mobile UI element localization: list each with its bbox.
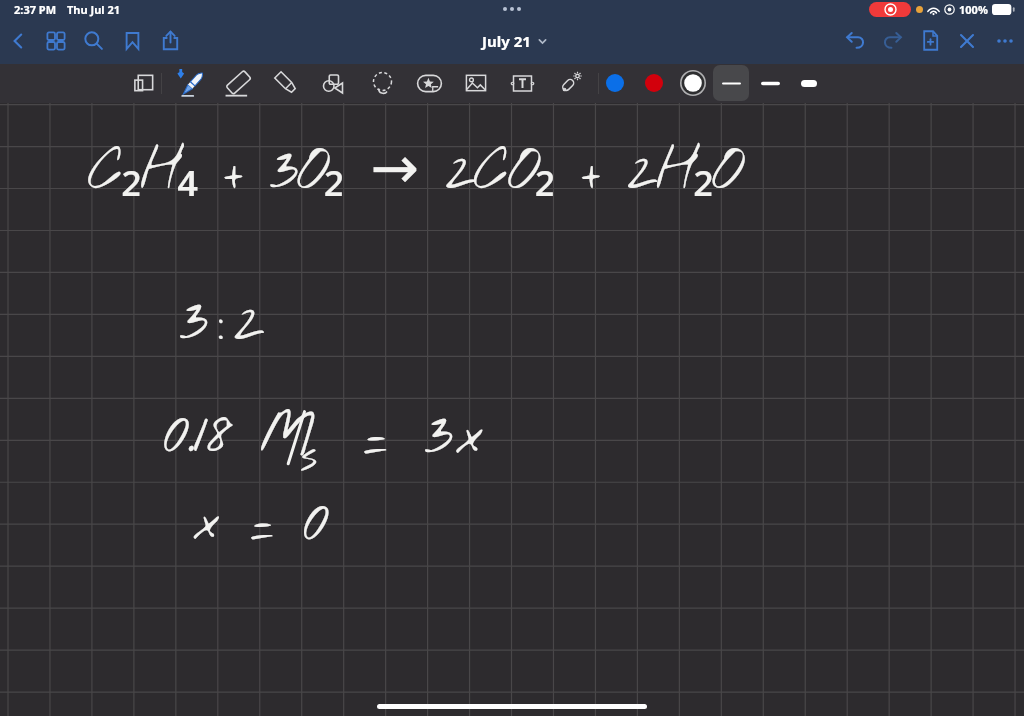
button[interactable]: Stroke width: [713, 65, 749, 101]
staticText: 3:2: [179, 285, 274, 362]
button[interactable]: Close: [948, 23, 986, 64]
staticText: C₂H₄ + 3O₂ → 2CO₂ + 2H₂O: [88, 126, 740, 211]
button[interactable]: Pen: [172, 64, 210, 102]
button[interactable]: Highlighter: [267, 64, 305, 102]
button[interactable]: Stroke width: [752, 65, 788, 101]
button[interactable]: Search: [74, 23, 112, 64]
button[interactable]: July 21: [482, 31, 547, 51]
staticText: Thu Jul 21: [67, 2, 121, 17]
button[interactable]: Eraser: [219, 64, 257, 102]
staticText: s: [300, 430, 318, 489]
button[interactable]: Text box: [503, 64, 541, 102]
staticText: =: [363, 399, 388, 476]
button[interactable]: Page view: [125, 64, 163, 102]
staticText: 100%: [959, 2, 988, 17]
button[interactable]: Colour: [639, 68, 669, 98]
button[interactable]: More: [986, 23, 1024, 64]
button[interactable]: Bookmark: [113, 23, 151, 64]
button[interactable]: Share: [151, 23, 189, 64]
button[interactable]: Add page: [911, 23, 949, 64]
button[interactable]: Undo: [836, 23, 874, 64]
button[interactable]: Sticker: [410, 64, 448, 102]
button[interactable]: Colour: [600, 68, 630, 98]
button[interactable]: Stroke width: [791, 65, 827, 101]
button[interactable]: Pages: [37, 23, 75, 64]
staticText: 3x: [424, 399, 486, 476]
button[interactable]: Redo: [873, 23, 911, 64]
button[interactable]: Back: [0, 23, 37, 64]
button[interactable]: Selected colour: [677, 67, 709, 99]
staticText: x = 0: [193, 487, 330, 562]
button[interactable]: Note canvas: [0, 103, 1024, 716]
button[interactable]: Lasso: [363, 64, 401, 102]
button[interactable]: Magic: [550, 64, 588, 102]
staticText: 0.18 M: [163, 399, 313, 474]
staticText: 2:37 PM: [14, 2, 57, 17]
button[interactable]: Recording: [869, 2, 911, 17]
button[interactable]: Image: [457, 64, 495, 102]
button[interactable]: Shapes: [314, 64, 352, 102]
staticText: July 21: [482, 31, 531, 51]
